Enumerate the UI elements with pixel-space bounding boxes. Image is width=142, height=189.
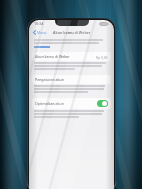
staticText: Menu	[37, 30, 47, 35]
staticText: Pengaturan akun	[35, 77, 64, 82]
button[interactable]: Akun kamu di Weber	[32, 52, 111, 61]
staticText: Akun kamu di Weber	[53, 30, 91, 35]
button[interactable]	[34, 46, 50, 48]
staticText: Akun kamu di Weber	[35, 54, 70, 59]
button[interactable]: Pengaturan akun	[32, 75, 111, 84]
staticText: 10:34	[34, 21, 44, 26]
staticText: Optimalkan akun	[35, 101, 64, 106]
button[interactable]: Optimalkan akun	[32, 98, 111, 109]
button[interactable]: Optimalkan akun toggle, on	[97, 100, 108, 107]
staticText: Rp 0,00	[96, 55, 108, 59]
button[interactable]: Menu	[32, 29, 48, 36]
